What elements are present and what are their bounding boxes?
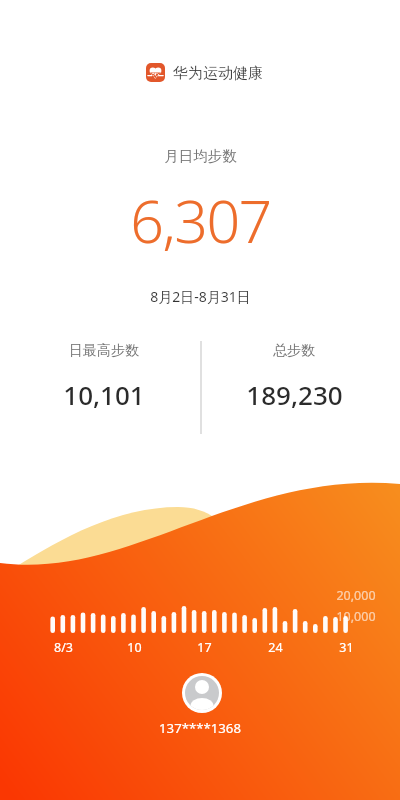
- staticText: 189,230: [246, 377, 343, 412]
- staticText: 24: [268, 639, 283, 656]
- button[interactable]: [182, 673, 222, 713]
- staticText: 8/3: [54, 639, 73, 656]
- staticText: 17: [197, 639, 212, 656]
- button[interactable]: [146, 63, 165, 82]
- staticText: 8月2日-8月31日: [150, 287, 251, 306]
- staticText: 10,000: [336, 608, 376, 625]
- button[interactable]: 华为运动健康: [173, 57, 293, 89]
- staticText: 华为运动健康: [173, 64, 263, 83]
- staticText: 10,101: [63, 377, 145, 412]
- staticText: 月日均步数: [164, 147, 237, 165]
- staticText: 日最高步数: [69, 342, 139, 360]
- staticText: 10: [127, 639, 142, 656]
- staticText: 6,307: [130, 180, 271, 260]
- staticText: 总步数: [273, 342, 315, 360]
- staticText: 31: [339, 639, 354, 656]
- staticText: 20,000: [336, 587, 376, 604]
- staticText: 137****1368: [159, 719, 241, 737]
